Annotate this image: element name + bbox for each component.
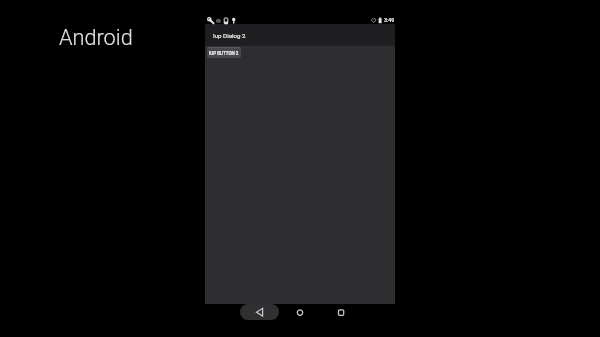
staticText: IUP BUTTON 2 [209,51,239,56]
staticText: Android [59,25,133,50]
staticText: Iup Dialog 2 [213,32,246,39]
button[interactable]: IUP BUTTON 2 [207,47,241,58]
button[interactable] [332,303,350,321]
button[interactable] [250,303,269,321]
staticText: 3:49 [384,17,395,23]
button[interactable] [240,304,279,320]
button[interactable] [291,303,309,321]
